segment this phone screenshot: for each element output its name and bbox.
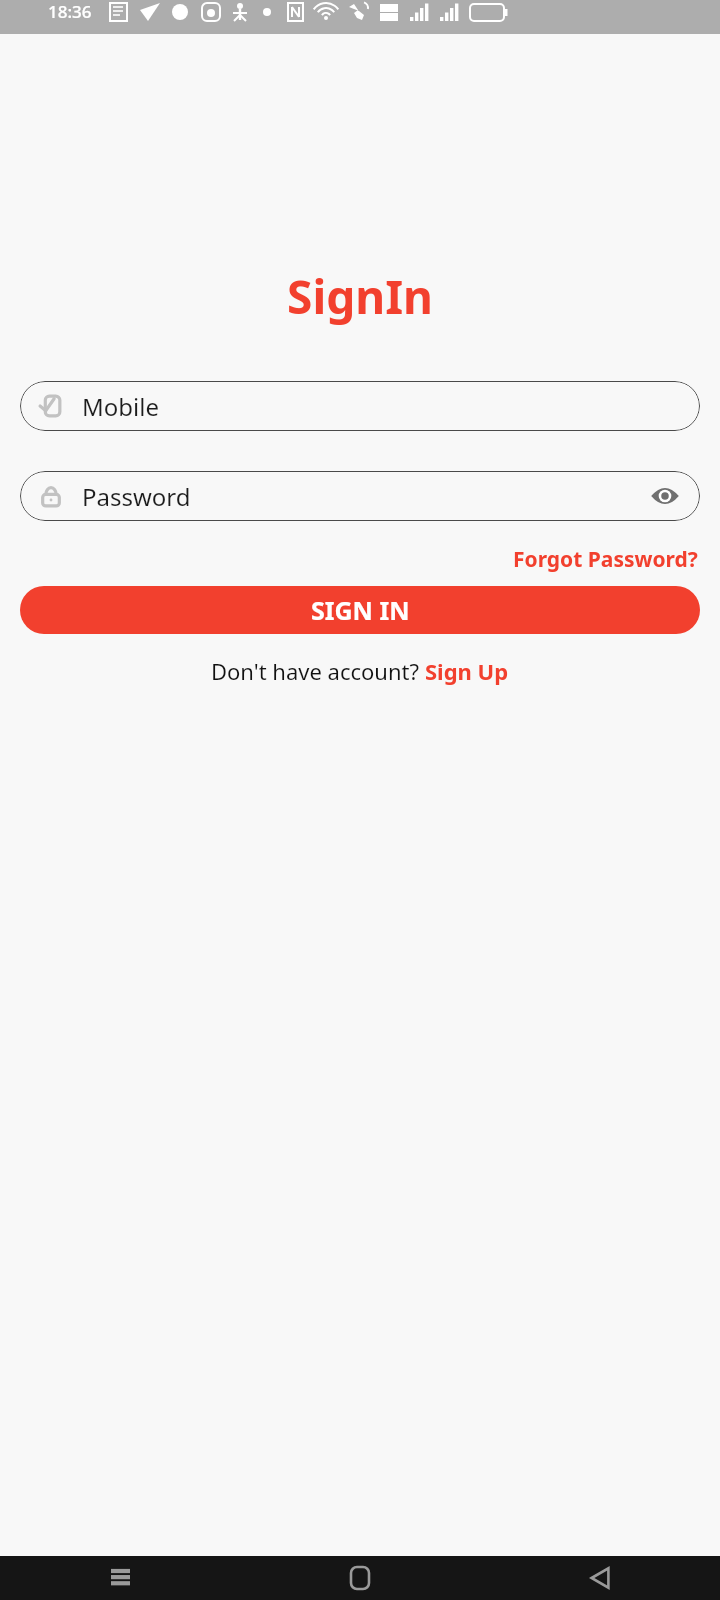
button[interactable]: Back xyxy=(480,1556,720,1600)
staticText: Sign Up xyxy=(425,656,509,686)
staticText: Password xyxy=(82,480,650,513)
staticText: 18:36 xyxy=(48,0,92,23)
button[interactable]: Show password xyxy=(650,481,680,511)
button[interactable]: Forgot Password? xyxy=(511,543,700,576)
staticText: SIGN IN xyxy=(311,593,410,627)
button[interactable]: Mobile xyxy=(20,381,700,431)
button[interactable]: Sign Up xyxy=(425,656,509,686)
staticText: Mobile xyxy=(82,390,680,423)
staticText: Forgot Password? xyxy=(513,545,698,574)
button[interactable]: Home xyxy=(240,1556,480,1600)
button[interactable]: Password xyxy=(20,471,700,521)
staticText: Don't have account? xyxy=(211,656,425,686)
button[interactable]: SIGN IN xyxy=(20,586,700,634)
button[interactable]: Recent apps xyxy=(0,1556,240,1600)
staticText: SignIn xyxy=(0,265,720,328)
